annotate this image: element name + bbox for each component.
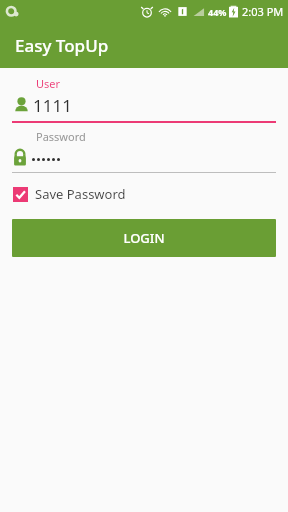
button[interactable]: Save Password xyxy=(0,183,138,205)
staticText: 1111 xyxy=(33,94,72,117)
staticText: 44% xyxy=(208,6,227,18)
staticText: Save Password xyxy=(35,185,126,203)
staticText: Password xyxy=(36,129,86,144)
other: User xyxy=(12,96,31,115)
staticText: User xyxy=(36,76,61,91)
staticText: LOGIN xyxy=(123,229,165,247)
button[interactable]: LOGIN xyxy=(12,219,276,257)
button[interactable]: Password xyxy=(0,129,288,173)
staticText: 2:03 PM xyxy=(242,4,284,19)
button[interactable]: User xyxy=(0,76,288,123)
other: Password xyxy=(12,148,28,167)
staticText: Easy TopUp xyxy=(15,34,109,57)
